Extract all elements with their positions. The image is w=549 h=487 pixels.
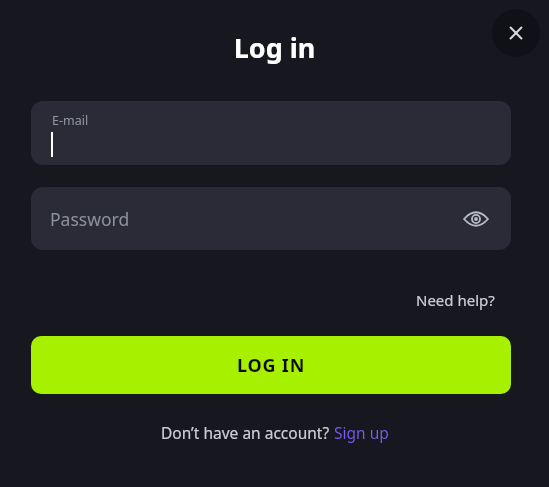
button[interactable]: Need help?: [414, 288, 497, 312]
button[interactable]: LOG IN: [31, 336, 511, 394]
staticText: Sign up: [334, 422, 389, 443]
staticText: Password: [50, 207, 130, 231]
staticText: Don’t have an account?: [161, 422, 334, 443]
button[interactable]: E-mail: [31, 101, 511, 165]
button[interactable]: Sign up: [334, 422, 389, 443]
button[interactable]: Close: [492, 9, 540, 57]
staticText: Need help?: [416, 290, 495, 310]
staticText: Log in: [0, 29, 549, 66]
button[interactable]: Show password: [456, 199, 496, 239]
staticText: E-mail: [52, 112, 89, 129]
button[interactable]: Password: [31, 187, 511, 250]
staticText: LOG IN: [237, 353, 306, 378]
